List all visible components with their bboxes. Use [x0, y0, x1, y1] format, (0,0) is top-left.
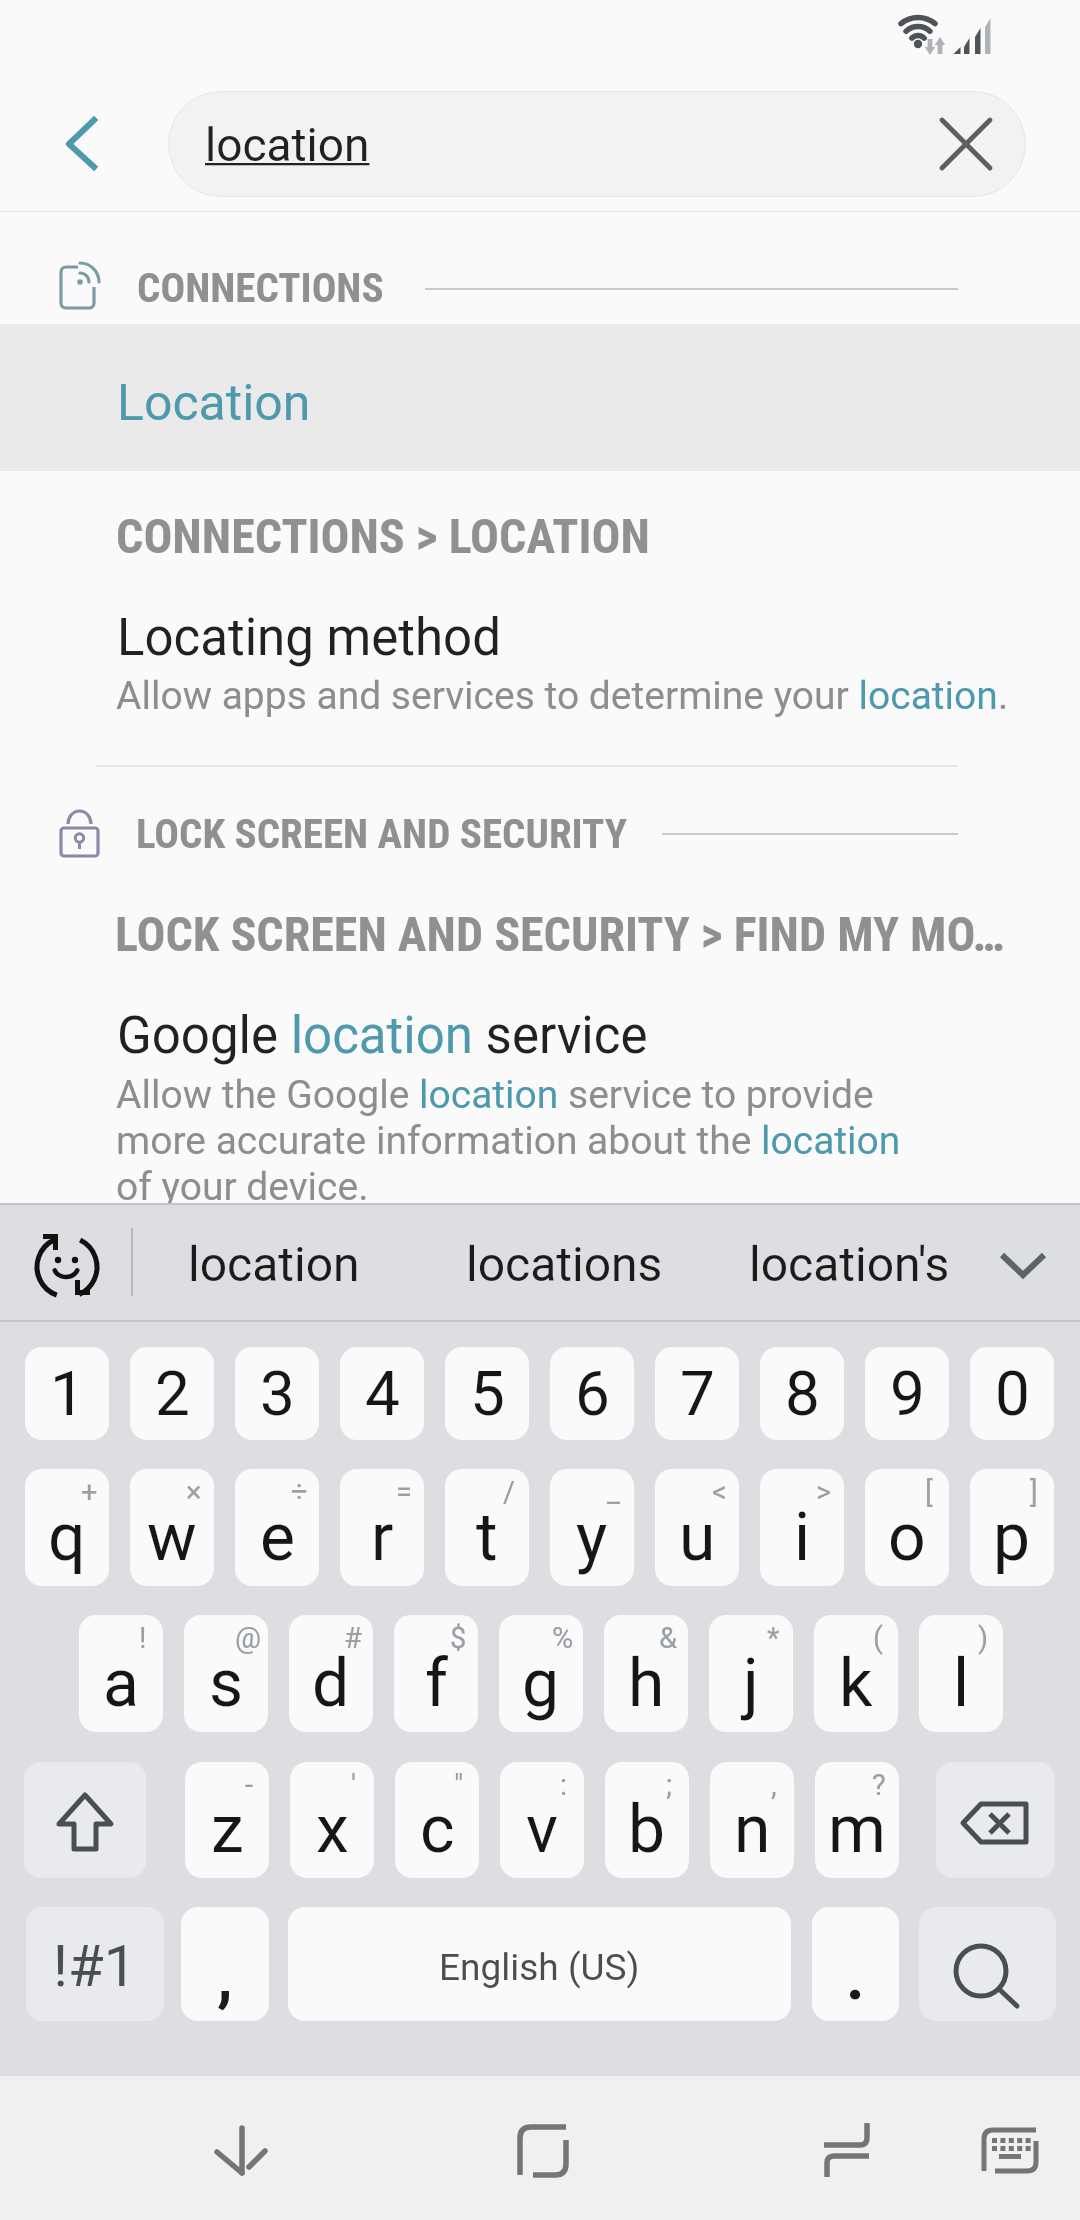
staticText: $ [450, 1621, 467, 1655]
button[interactable]: ) [919, 1615, 1003, 1732]
staticText: English (US) [439, 1946, 640, 1989]
button[interactable]: * [709, 1615, 793, 1732]
button[interactable]: ( [814, 1615, 898, 1732]
button[interactable]: # [289, 1615, 373, 1732]
button[interactable]: 8 [760, 1347, 844, 1440]
staticText: 9 [890, 1357, 925, 1430]
staticText: s [209, 1645, 244, 1722]
button[interactable]: 5 [445, 1347, 529, 1440]
staticText: v [526, 1791, 558, 1868]
staticText: x [316, 1791, 349, 1868]
staticText: ] [1030, 1475, 1038, 1509]
staticText: r [371, 1499, 394, 1576]
staticText: _ [607, 1475, 621, 1509]
staticText: CONNECTIONS > LOCATION [116, 508, 650, 564]
button[interactable]: location [168, 91, 1026, 197]
staticText: 1 [50, 1357, 85, 1430]
button[interactable]: Show more suggestions [988, 1227, 1058, 1297]
staticText: j [743, 1645, 759, 1722]
button[interactable]: Recent apps [810, 2116, 910, 2216]
staticText: h [628, 1645, 665, 1722]
staticText: 8 [785, 1357, 820, 1430]
button[interactable]: 6 [550, 1347, 634, 1440]
button[interactable]: + [25, 1469, 109, 1586]
button[interactable]: Search [919, 1907, 1056, 2021]
staticText: l [953, 1645, 970, 1722]
staticText: locations [466, 1236, 663, 1292]
button[interactable]: English (US) [288, 1907, 791, 2021]
button[interactable]: ? [815, 1762, 899, 1878]
staticText: c [420, 1791, 455, 1868]
button[interactable]: 9 [865, 1347, 949, 1440]
staticText: q [48, 1499, 86, 1576]
button[interactable]: , [181, 1907, 269, 2021]
staticText: [ [925, 1475, 933, 1509]
button[interactable]: × [130, 1469, 214, 1586]
staticText: Location [117, 374, 311, 433]
staticText: # [344, 1621, 362, 1655]
button[interactable]: !#1 [26, 1907, 164, 2021]
button[interactable]: ] [970, 1469, 1054, 1586]
staticText: u [679, 1499, 716, 1576]
button[interactable]: - [185, 1762, 269, 1878]
button[interactable]: " [395, 1762, 479, 1878]
staticText: w [147, 1499, 197, 1576]
button[interactable]: 3 [235, 1347, 319, 1440]
button[interactable]: 7 [655, 1347, 739, 1440]
button[interactable]: 4 [340, 1347, 424, 1440]
button[interactable]: Emoji keyboard [26, 1223, 106, 1303]
staticText: 7 [680, 1357, 715, 1430]
button[interactable]: Shift [24, 1762, 146, 1878]
staticText: ) [978, 1621, 989, 1655]
staticText: & [659, 1621, 678, 1655]
button[interactable]: @ [184, 1615, 268, 1732]
staticText: ( [873, 1621, 883, 1655]
button[interactable]: _ [550, 1469, 634, 1586]
staticText: , [771, 1768, 777, 1802]
button[interactable]: : [500, 1762, 584, 1878]
staticText: - [245, 1768, 254, 1802]
button[interactable]: ÷ [235, 1469, 319, 1586]
staticText: 5 [470, 1357, 505, 1430]
button[interactable]: . [812, 1907, 899, 2021]
staticText: o [888, 1499, 926, 1576]
button[interactable]: & [604, 1615, 688, 1732]
button[interactable]: 0 [970, 1347, 1054, 1440]
button[interactable]: % [499, 1615, 583, 1732]
staticText: i [794, 1499, 811, 1576]
staticText: f [425, 1645, 448, 1722]
staticText: p [993, 1499, 1031, 1576]
button[interactable]: Delete [936, 1762, 1055, 1878]
button[interactable]: Hide keyboard [192, 2116, 292, 2216]
staticText: < [712, 1475, 727, 1509]
button[interactable]: Location [0, 324, 1080, 471]
button[interactable]: 2 [130, 1347, 214, 1440]
staticText: !#1 [53, 1932, 137, 2000]
staticText: d [312, 1645, 350, 1722]
staticText: a [103, 1645, 139, 1722]
button[interactable]: , [710, 1762, 794, 1878]
staticText: e [260, 1499, 295, 1576]
button[interactable]: Change keyboard [962, 2116, 1062, 2216]
button[interactable]: ! [79, 1615, 163, 1732]
button[interactable]: > [760, 1469, 844, 1586]
staticText: > [816, 1475, 832, 1509]
staticText: m [828, 1791, 886, 1868]
staticText: 3 [260, 1357, 295, 1430]
button[interactable]: Clear search [926, 104, 1006, 184]
button[interactable]: < [655, 1469, 739, 1586]
button[interactable]: ' [290, 1762, 374, 1878]
button[interactable]: [ [865, 1469, 949, 1586]
staticText: ? [872, 1768, 886, 1802]
button[interactable]: Navigate up [44, 100, 130, 186]
button[interactable]: Home [493, 2116, 593, 2216]
button[interactable]: 1 [25, 1347, 109, 1440]
staticText: LOCK SCREEN AND SECURITY [136, 810, 627, 858]
button[interactable]: ; [605, 1762, 689, 1878]
staticText: . [846, 1940, 865, 2015]
staticText: k [839, 1645, 873, 1722]
button[interactable]: / [445, 1469, 529, 1586]
button[interactable]: $ [394, 1615, 478, 1732]
button[interactable]: = [340, 1469, 424, 1586]
staticText: 0 [995, 1357, 1030, 1430]
